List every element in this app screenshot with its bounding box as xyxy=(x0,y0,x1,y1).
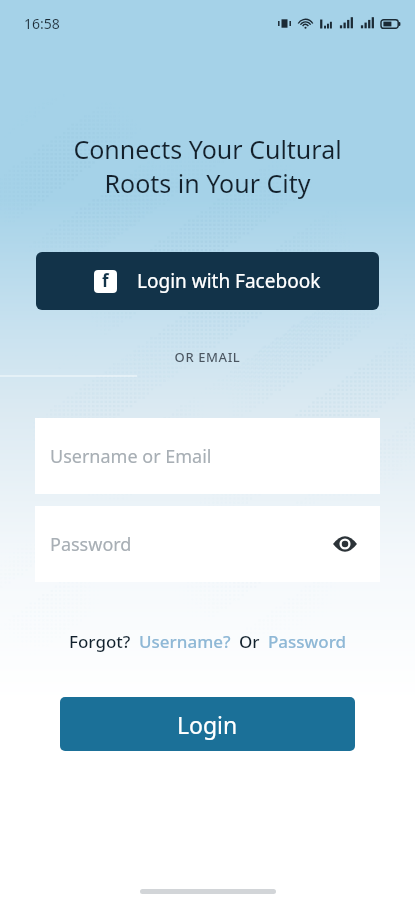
button[interactable]: Username? xyxy=(139,630,231,653)
staticText: Password xyxy=(50,532,132,557)
staticText: Username or Email xyxy=(50,444,212,469)
staticText: Or xyxy=(239,630,260,653)
button[interactable]: Password xyxy=(35,506,380,582)
staticText: Login xyxy=(177,709,238,740)
button[interactable]: Login xyxy=(60,697,355,751)
staticText: Username? xyxy=(139,630,231,653)
staticText: f xyxy=(102,270,109,292)
staticText: Forgot? xyxy=(69,630,131,653)
button[interactable]: Show password xyxy=(328,527,362,561)
staticText: OR EMAIL xyxy=(0,348,415,366)
button[interactable]: f xyxy=(36,252,379,310)
staticText: 16:58 xyxy=(24,14,60,33)
button[interactable]: Password xyxy=(268,630,347,653)
button[interactable]: Username or Email xyxy=(35,418,380,494)
staticText: Login with Facebook xyxy=(137,268,321,294)
staticText: Password xyxy=(268,630,347,653)
staticText: Connects Your Cultural Roots in Your Cit… xyxy=(16,132,399,200)
